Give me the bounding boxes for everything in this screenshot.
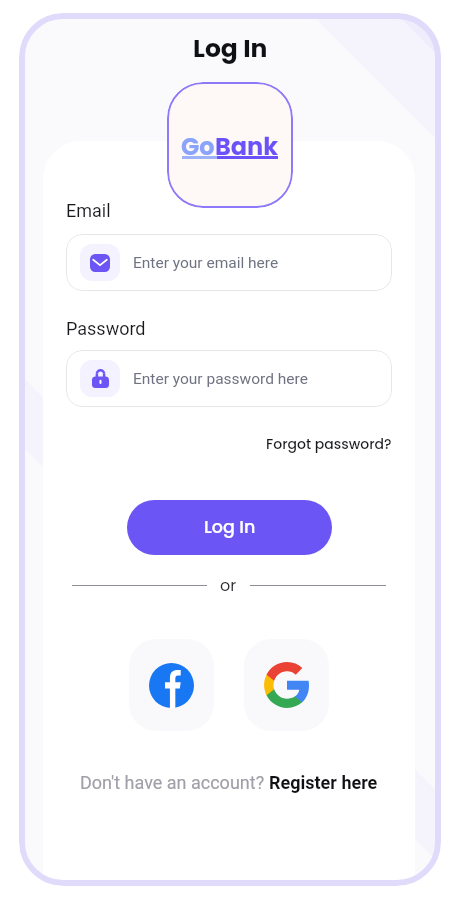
staticText: Enter your email here [133,254,279,272]
staticText: Bank [215,130,279,164]
staticText: or [220,574,237,596]
button[interactable]: Forgot password? [266,434,392,454]
staticText: Go [181,130,215,164]
staticText: Forgot password? [266,434,392,454]
button[interactable]: Enter your password here [66,350,392,407]
staticText: Enter your password here [133,370,308,388]
button[interactable]: Sign in with Facebook [129,639,214,731]
button[interactable]: Don't have an account? [80,772,378,793]
staticText: Don't have an account? [80,772,269,793]
button[interactable]: Enter your email here [66,234,392,291]
staticText: Register here [269,772,378,793]
staticText: Log In [193,31,268,66]
staticText: Email [66,200,111,221]
button[interactable]: Log In [127,500,332,555]
button[interactable]: Sign in with Google [244,639,329,731]
staticText: Password [66,318,146,339]
staticText: Log In [204,515,256,540]
